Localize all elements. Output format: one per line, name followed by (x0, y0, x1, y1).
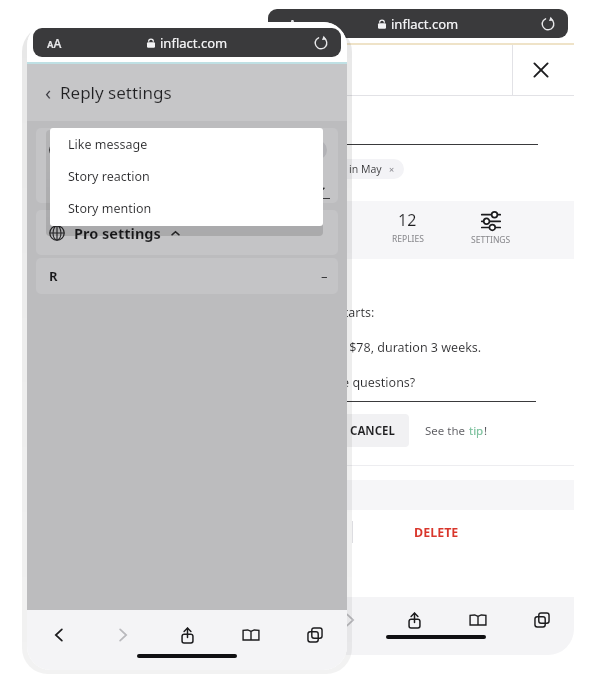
button[interactable]: Bookmarks (219, 618, 283, 652)
staticText: DELETE (414, 524, 459, 541)
button[interactable]: SETTINGS (449, 209, 532, 246)
button[interactable]: Story mention (50, 192, 323, 224)
staticText: ᴀA (282, 16, 297, 32)
staticText: Reply settings (60, 81, 172, 104)
button[interactable]: Reload (540, 16, 556, 32)
staticText: CANCEL (350, 423, 395, 439)
button[interactable]: ‹ (45, 79, 172, 106)
staticText: Choose from the list (50, 181, 159, 197)
button[interactable]: Share (155, 618, 219, 652)
staticText: rword (272, 118, 309, 136)
button[interactable]: Bookmarks (446, 603, 510, 637)
button[interactable]: Story reaction (50, 160, 323, 192)
button[interactable]: Forward (318, 603, 382, 637)
staticText: REPLIES (392, 233, 424, 245)
staticText: 11 (315, 209, 334, 231)
button[interactable]: Back (27, 618, 91, 652)
staticText: inflact.com (391, 15, 459, 33)
staticText: Story reaction (68, 168, 150, 185)
staticText: inflact.com (160, 34, 228, 52)
button[interactable]: Choose from the list (50, 181, 326, 197)
staticText: Like message (68, 136, 148, 153)
button[interactable]: Close (530, 59, 552, 81)
button[interactable]: ᴀA (268, 9, 568, 38)
staticText: See the (425, 423, 469, 439)
button[interactable]: Reload (313, 35, 329, 51)
staticText: × (389, 163, 395, 175)
staticText: word (272, 53, 304, 71)
staticText: Story mention (68, 200, 152, 217)
staticText: ‹ (45, 79, 52, 106)
button[interactable]: Toggle (281, 140, 327, 160)
button[interactable]: Tabs (510, 603, 574, 637)
staticText: ? (331, 56, 335, 68)
button[interactable]: Share (382, 603, 446, 637)
staticText: SETTINGS (471, 234, 511, 246)
button[interactable]: Forward (91, 618, 155, 652)
button[interactable]: CANCEL (335, 414, 409, 447)
staticText: join in May (328, 162, 382, 176)
staticText: ! (484, 423, 488, 439)
button[interactable]: 11 (282, 209, 366, 245)
staticText: The course starts: (270, 304, 375, 321)
staticText: ou have more questions? (268, 374, 416, 391)
button[interactable]: 12 (366, 209, 449, 245)
button[interactable]: Pro settings (36, 210, 338, 255)
staticText: 12 (398, 209, 417, 231)
staticText: USERS (311, 233, 337, 245)
staticText: tip (469, 423, 484, 439)
staticText: R (49, 267, 58, 285)
button[interactable]: DELETE (414, 524, 459, 541)
staticText: Pro settings (74, 223, 161, 243)
button[interactable]: join in May (328, 159, 395, 179)
button[interactable]: See the (425, 423, 488, 439)
staticText: – (321, 267, 328, 285)
button[interactable]: ᴀA (33, 28, 341, 57)
staticText: Language target (74, 140, 195, 160)
button[interactable]: Tabs (283, 618, 347, 652)
button[interactable]: Like message (50, 128, 323, 160)
staticText: ᴀA (47, 35, 62, 51)
staticText: 6, 2020. Price $78, duration 3 weeks. (268, 339, 482, 356)
